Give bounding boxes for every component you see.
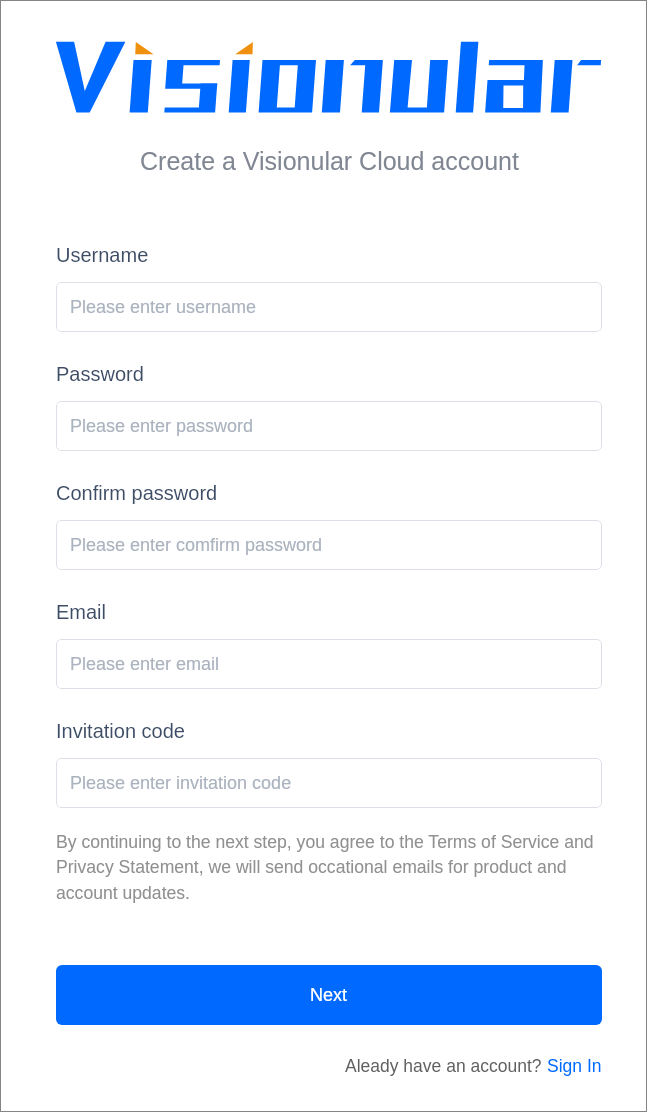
staticText: Password <box>56 363 144 385</box>
staticText: Email <box>56 601 107 623</box>
button[interactable]: Please enter password <box>56 401 602 451</box>
button[interactable]: Sign In <box>547 1056 602 1076</box>
staticText: Invitation code <box>56 720 185 742</box>
button[interactable]: Please enter email <box>56 639 602 689</box>
staticText: Username <box>56 244 149 266</box>
staticText: Please enter username <box>70 297 257 317</box>
staticText: By continuing to the next step, you agre… <box>56 832 602 903</box>
staticText: Create a Visionular Cloud account <box>140 147 519 175</box>
button[interactable]: Next <box>56 965 602 1025</box>
button[interactable]: Please enter invitation code <box>56 758 602 808</box>
other: Visionular <box>0 0 647 1112</box>
staticText: Confirm password <box>56 482 218 504</box>
staticText: Please enter invitation code <box>70 773 292 793</box>
button[interactable]: Please enter username <box>56 282 602 332</box>
staticText: Next <box>310 985 348 1005</box>
staticText: Please enter email <box>70 654 220 674</box>
staticText: Sign In <box>547 1056 602 1076</box>
staticText: Aleady have an account? <box>345 1056 547 1076</box>
button[interactable]: Please enter comfirm password <box>56 520 602 570</box>
staticText: Please enter comfirm password <box>70 535 323 555</box>
staticText: Please enter password <box>70 416 254 436</box>
